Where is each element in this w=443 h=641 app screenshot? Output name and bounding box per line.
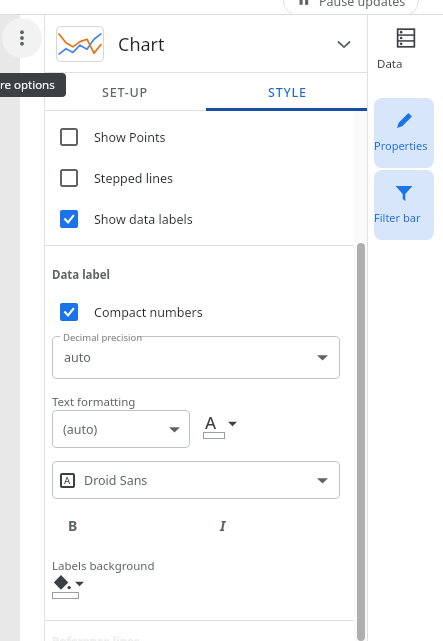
- staticText: Decimal precision: [63, 331, 143, 344]
- button[interactable]: Pause updates: [283, 0, 419, 16]
- staticText: Reference lines: [52, 634, 140, 641]
- button[interactable]: Bold: [60, 512, 86, 538]
- button[interactable]: Properties: [374, 98, 434, 168]
- button[interactable]: Stepped lines: [45, 161, 345, 195]
- button[interactable]: STYLE: [206, 73, 368, 111]
- button[interactable]: (auto): [52, 410, 190, 448]
- staticText: Text formatting: [52, 394, 136, 410]
- staticText: Compact numbers: [94, 304, 203, 321]
- staticText: STYLE: [268, 84, 307, 101]
- staticText: Pause updates: [319, 0, 406, 10]
- staticText: Droid Sans: [84, 472, 148, 489]
- button[interactable]: Data: [377, 27, 434, 89]
- staticText: Show Points: [94, 129, 166, 146]
- staticText: re options: [0, 77, 55, 93]
- staticText: Show data labels: [94, 211, 193, 228]
- button[interactable]: Compact numbers: [45, 295, 345, 329]
- button[interactable]: Text colour: [202, 408, 244, 442]
- button[interactable]: Show data labels: [45, 202, 345, 236]
- staticText: Stepped lines: [94, 170, 174, 187]
- staticText: Data label: [52, 267, 111, 283]
- button[interactable]: More options: [2, 18, 42, 58]
- staticText: Properties: [374, 138, 434, 153]
- button[interactable]: Chart: [45, 16, 368, 72]
- staticText: Data: [377, 56, 434, 72]
- staticText: (auto): [63, 421, 98, 438]
- staticText: auto: [64, 349, 91, 366]
- button[interactable]: SET-UP: [45, 73, 206, 111]
- staticText: Filter bar: [374, 210, 434, 225]
- staticText: A: [205, 411, 217, 434]
- staticText: SET-UP: [102, 84, 149, 101]
- other: Collapse: [334, 34, 354, 54]
- button[interactable]: A: [52, 461, 340, 499]
- staticText: I: [220, 516, 226, 535]
- button[interactable]: Filter bar: [374, 170, 434, 240]
- button[interactable]: Italic: [210, 512, 236, 538]
- staticText: Labels background: [52, 558, 155, 574]
- staticText: Chart: [118, 32, 334, 57]
- button[interactable]: Show Points: [45, 120, 345, 154]
- staticText: A: [64, 474, 71, 487]
- button[interactable]: auto: [52, 336, 340, 379]
- button[interactable]: Labels background colour: [50, 572, 90, 596]
- staticText: B: [68, 516, 78, 535]
